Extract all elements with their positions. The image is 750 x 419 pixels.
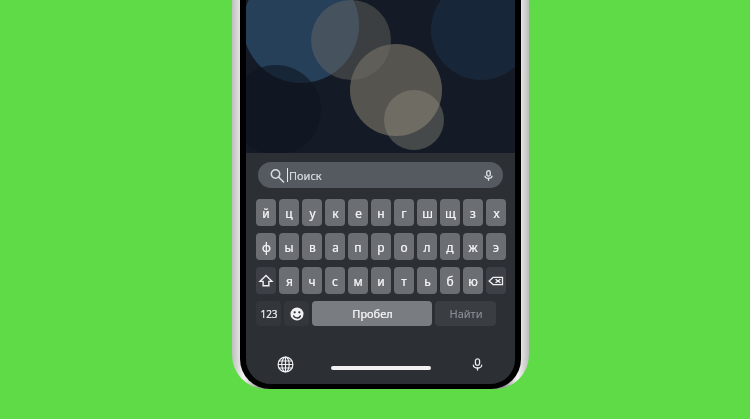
button[interactable]: ю [463, 267, 483, 294]
button[interactable]: ф [256, 233, 276, 260]
staticText: н [377, 205, 385, 221]
staticText: д [446, 239, 454, 255]
button[interactable]: л [417, 233, 437, 260]
button[interactable]: э [486, 233, 506, 260]
button[interactable]: 123 [256, 301, 281, 326]
button[interactable]: д [440, 233, 460, 260]
button[interactable]: о [394, 233, 414, 260]
staticText: Найти [449, 306, 483, 321]
button[interactable]: х [486, 199, 506, 226]
staticText: б [446, 273, 454, 289]
staticText: ц [285, 205, 293, 221]
staticText: т [401, 273, 407, 289]
staticText: л [423, 239, 431, 255]
button[interactable]: г [394, 199, 414, 226]
staticText: э [493, 239, 499, 255]
staticText: й [262, 205, 270, 221]
button[interactable]: ь [417, 267, 437, 294]
other: Emoji [289, 306, 305, 322]
staticText: а [332, 239, 339, 255]
staticText: х [493, 205, 500, 221]
staticText: е [355, 205, 362, 221]
staticText: ч [308, 273, 316, 289]
button[interactable]: ы [279, 233, 299, 260]
button[interactable]: а [325, 233, 345, 260]
staticText: с [332, 273, 338, 289]
staticText: 123 [260, 307, 278, 321]
staticText: я [286, 273, 293, 289]
button[interactable]: н [371, 199, 391, 226]
button[interactable]: т [394, 267, 414, 294]
staticText: в [309, 239, 316, 255]
staticText: р [377, 239, 385, 255]
button[interactable]: ш [417, 199, 437, 226]
staticText: м [353, 273, 363, 289]
staticText: и [377, 273, 385, 289]
button[interactable]: к [325, 199, 345, 226]
button[interactable]: Emoji [284, 301, 309, 326]
button[interactable]: ц [279, 199, 299, 226]
staticText: Пробел [352, 306, 393, 321]
button[interactable]: м [348, 267, 368, 294]
staticText: ю [468, 273, 478, 289]
button[interactable]: з [463, 199, 483, 226]
staticText: к [332, 205, 339, 221]
staticText: ы [284, 239, 294, 255]
button[interactable]: Switch keyboard [273, 352, 297, 376]
button[interactable]: ж [463, 233, 483, 260]
staticText: Поиск [289, 168, 322, 183]
staticText: щ [445, 205, 456, 221]
staticText: ь [424, 273, 431, 289]
button[interactable]: Найти [435, 301, 496, 326]
staticText: ш [422, 205, 433, 221]
other: Shift [257, 272, 275, 290]
button[interactable]: щ [440, 199, 460, 226]
staticText: о [400, 239, 408, 255]
button[interactable]: и [371, 267, 391, 294]
button[interactable]: е [348, 199, 368, 226]
button[interactable]: Пробел [312, 301, 432, 326]
button[interactable]: с [325, 267, 345, 294]
button[interactable]: Shift [256, 267, 276, 294]
button[interactable]: р [371, 233, 391, 260]
staticText: ж [468, 239, 478, 255]
button[interactable]: Voice search [478, 165, 498, 185]
button[interactable]: п [348, 233, 368, 260]
staticText: ф [262, 239, 271, 255]
staticText: г [401, 205, 407, 221]
button[interactable]: Поиск [258, 162, 503, 188]
button[interactable]: Dictation [465, 352, 489, 376]
staticText: у [309, 205, 316, 221]
button[interactable]: у [302, 199, 322, 226]
button[interactable]: Backspace [486, 267, 506, 294]
button[interactable]: б [440, 267, 460, 294]
staticText: з [470, 205, 476, 221]
button[interactable]: й [256, 199, 276, 226]
button[interactable]: в [302, 233, 322, 260]
button[interactable]: я [279, 267, 299, 294]
other: Backspace [487, 272, 505, 290]
button[interactable]: ч [302, 267, 322, 294]
staticText: п [354, 239, 362, 255]
